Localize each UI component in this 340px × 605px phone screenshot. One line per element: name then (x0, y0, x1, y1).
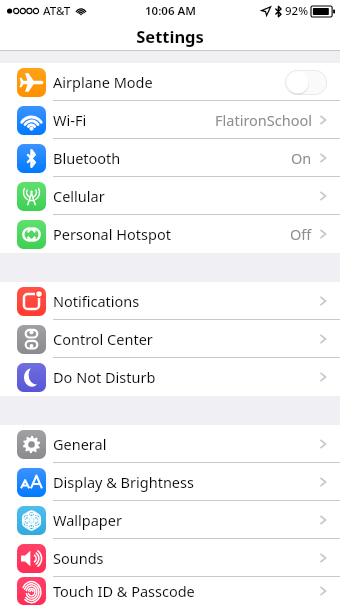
staticText: FlatironSchool (215, 110, 312, 130)
staticText: Wallpaper (53, 510, 319, 530)
button[interactable]: Display & Brightness (0, 463, 340, 501)
staticText: Sounds (53, 548, 319, 568)
button[interactable]: Cellular (0, 177, 340, 215)
button[interactable]: Personal Hotspot (0, 215, 340, 253)
staticText: Notifications (53, 291, 319, 311)
staticText: Settings (136, 25, 204, 47)
staticText: Touch ID & Passcode (53, 581, 319, 601)
button[interactable]: Bluetooth (0, 139, 340, 177)
button[interactable]: Airplane Mode toggle (285, 70, 327, 95)
staticText: Cellular (53, 186, 319, 206)
staticText: Bluetooth (53, 148, 291, 168)
button[interactable]: Control Center (0, 320, 340, 358)
staticText: 10:06 AM (145, 3, 196, 19)
button[interactable]: Touch ID & Passcode (0, 577, 340, 605)
staticText: General (53, 434, 319, 454)
button[interactable]: General (0, 425, 340, 463)
staticText: Display & Brightness (53, 472, 319, 492)
staticText: Wi-Fi (53, 110, 215, 130)
button[interactable]: Notifications (0, 282, 340, 320)
button[interactable]: Airplane Mode (0, 63, 340, 101)
staticText: Personal Hotspot (53, 224, 290, 244)
staticText: Off (290, 224, 312, 244)
staticText: Do Not Disturb (53, 367, 319, 387)
staticText: Airplane Mode (53, 72, 285, 92)
staticText: On (291, 148, 312, 168)
staticText: 92% (285, 3, 308, 19)
button[interactable]: Wallpaper (0, 501, 340, 539)
staticText: Control Center (53, 329, 319, 349)
staticText: AT&T (43, 3, 71, 19)
button[interactable]: Do Not Disturb (0, 358, 340, 396)
button[interactable]: Sounds (0, 539, 340, 577)
button[interactable]: Wi-Fi (0, 101, 340, 139)
